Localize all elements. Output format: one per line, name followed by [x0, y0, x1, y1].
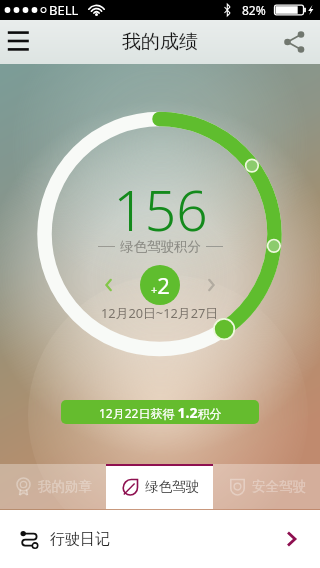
button[interactable]: 行驶日记 [0, 510, 320, 568]
staticText: 我的勋章 [38, 478, 92, 495]
staticText: 安全驾驶 [252, 478, 306, 495]
staticText: 我的成绩 [122, 30, 198, 54]
staticText: 82% [242, 2, 266, 18]
button[interactable]: Previous week [95, 272, 121, 298]
button[interactable]: Next week [199, 272, 225, 298]
staticText: BELL [49, 1, 79, 19]
staticText: +2 [151, 270, 170, 300]
staticText: 行驶日记 [50, 530, 110, 549]
button[interactable]: 我的勋章 [0, 464, 106, 509]
button[interactable]: 安全驾驶 [213, 464, 320, 509]
button[interactable]: 12月22日获得 1.2积分 [61, 400, 259, 424]
staticText: 12月22日获得 1.2积分 [99, 403, 222, 422]
button[interactable]: 绿色驾驶 [106, 464, 213, 509]
button[interactable]: Share [280, 20, 320, 64]
button[interactable]: Menu [0, 20, 44, 64]
staticText: 12月20日~12月27日 [101, 304, 219, 321]
staticText: 绿色驾驶 [145, 478, 199, 495]
staticText: 绿色驾驶积分 [120, 238, 201, 255]
staticText: 156 [113, 172, 208, 247]
other: Open driving diary [284, 531, 300, 547]
button[interactable]: +2 [140, 265, 180, 305]
